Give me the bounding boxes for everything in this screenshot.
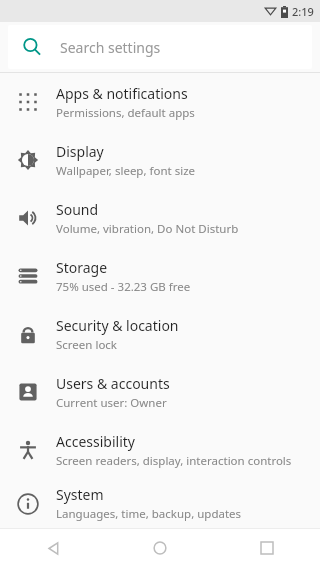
staticText: Wallpaper, sleep, font size	[56, 163, 196, 179]
button[interactable]: Display	[0, 131, 320, 189]
staticText: Search settings	[60, 38, 161, 57]
button[interactable]: Search	[8, 25, 312, 69]
button[interactable]: Storage	[0, 247, 320, 305]
button[interactable]: Recent apps	[213, 528, 320, 568]
button[interactable]: Sound	[0, 189, 320, 247]
staticText: Users & accounts	[56, 374, 170, 393]
staticText: Languages, time, backup, updates	[56, 506, 242, 522]
button[interactable]: Users & accounts	[0, 363, 320, 421]
staticText: Apps & notifications	[56, 84, 188, 103]
button[interactable]: Apps & notifications	[0, 73, 320, 131]
button[interactable]: Security & location	[0, 305, 320, 363]
staticText: Storage	[56, 258, 108, 277]
staticText: Volume, vibration, Do Not Disturb	[56, 221, 239, 237]
staticText: Security & location	[56, 316, 179, 335]
button[interactable]: Back	[0, 528, 106, 568]
staticText: Display	[56, 142, 104, 161]
button[interactable]: Home	[106, 528, 213, 568]
staticText: System	[56, 485, 104, 504]
staticText: Current user: Owner	[56, 395, 167, 411]
staticText: Screen lock	[56, 337, 118, 353]
staticText: Accessibility	[56, 432, 135, 451]
other: Search	[22, 37, 42, 57]
button[interactable]: Accessibility	[0, 421, 320, 479]
staticText: 2:19	[292, 4, 314, 19]
staticText: 75% used - 32.23 GB free	[56, 279, 191, 295]
button[interactable]: System	[0, 479, 320, 528]
staticText: Sound	[56, 200, 99, 219]
staticText: Permissions, default apps	[56, 105, 195, 121]
staticText: Screen readers, display, interaction con…	[56, 453, 292, 469]
